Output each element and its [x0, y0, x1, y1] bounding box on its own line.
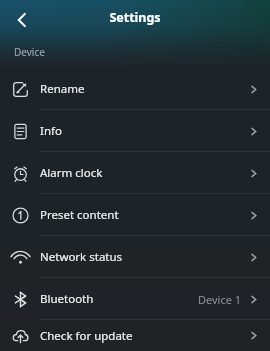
staticText: Bluetooth [40, 291, 94, 307]
button[interactable]: Bluetooth [0, 278, 270, 320]
button[interactable]: Network status [0, 236, 270, 278]
button[interactable]: Alarm clock [0, 152, 270, 194]
staticText: Info [40, 123, 62, 139]
button[interactable]: Check for update [0, 320, 270, 351]
staticText: Settings [0, 9, 270, 26]
staticText: Check for update [40, 328, 133, 344]
button[interactable]: Info [0, 110, 270, 152]
button[interactable]: Rename [0, 68, 270, 110]
staticText: Alarm clock [40, 165, 103, 181]
button[interactable]: Preset content [0, 194, 270, 236]
staticText: Network status [40, 249, 123, 265]
staticText: Device 1 [198, 292, 242, 307]
staticText: Preset content [40, 207, 119, 223]
staticText: Device [14, 45, 45, 59]
staticText: Rename [40, 81, 85, 97]
button[interactable]: Back [6, 4, 38, 36]
